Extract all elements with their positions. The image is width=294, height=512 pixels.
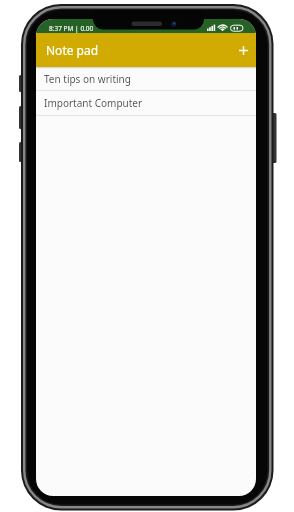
button[interactable]: Important Computer: [36, 91, 256, 115]
button[interactable]: Note pad: [36, 33, 256, 67]
button[interactable]: [233, 40, 253, 60]
staticText: Ten tips on writing: [44, 72, 131, 86]
button[interactable]: Ten tips on writing: [36, 67, 256, 90]
staticText: 8:37 PM | 0.00: [49, 24, 94, 33]
staticText: Note pad: [46, 42, 99, 58]
staticText: Important Computer: [44, 96, 143, 110]
